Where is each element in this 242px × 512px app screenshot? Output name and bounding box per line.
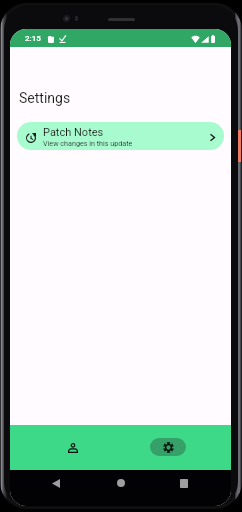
staticText: Settings (19, 90, 71, 106)
button[interactable]: Home (109, 471, 133, 495)
staticText: Patch Notes (43, 126, 104, 139)
button[interactable]: Patch Notes (17, 122, 224, 150)
button[interactable]: Back (44, 471, 68, 495)
other: Open patch notes (210, 134, 215, 141)
button[interactable]: Settings (122, 425, 214, 470)
staticText: 2:15 (25, 34, 41, 43)
button[interactable]: Account (27, 425, 119, 470)
staticText: View changes in this update (43, 139, 133, 147)
button[interactable]: Recent apps (172, 471, 196, 495)
